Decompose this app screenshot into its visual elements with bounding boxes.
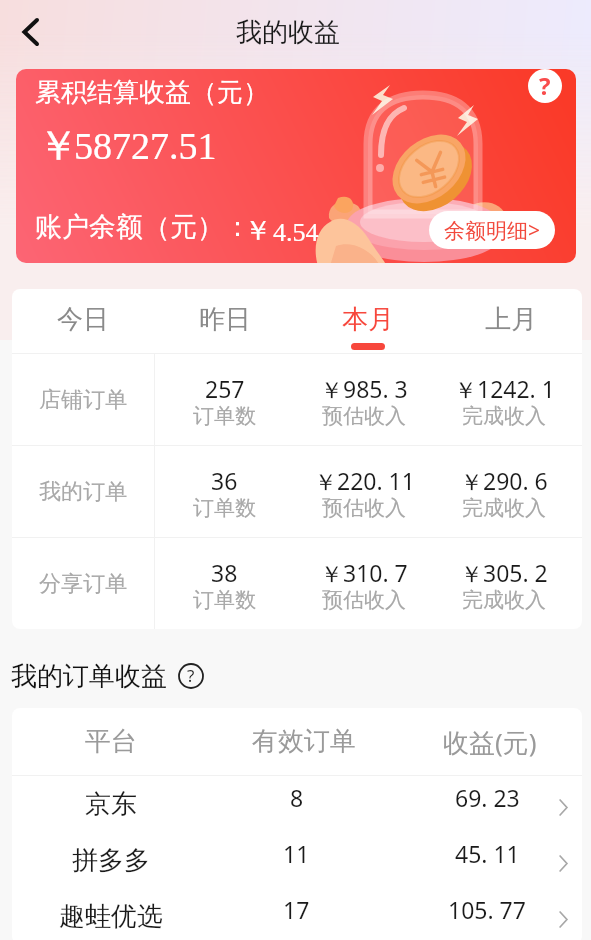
- staticText: 257: [205, 373, 245, 404]
- staticText: 完成收入: [462, 495, 546, 521]
- staticText: 本月: [342, 303, 394, 336]
- staticText: 45. 11: [455, 838, 520, 869]
- staticText: 余额明细>: [444, 216, 541, 245]
- button[interactable]: 昨日: [154, 289, 296, 353]
- staticText: 完成收入: [462, 587, 546, 613]
- staticText: 36: [211, 465, 238, 496]
- staticText: 69. 23: [455, 782, 520, 813]
- staticText: 今日: [57, 303, 109, 336]
- staticText: 预估收入: [322, 495, 406, 521]
- staticText: ￥: [37, 120, 79, 173]
- staticText: 订单数: [193, 495, 256, 521]
- staticText: 38: [211, 557, 238, 588]
- staticText: 完成收入: [462, 403, 546, 429]
- staticText: 账户余额（元）：: [35, 210, 251, 244]
- staticText: ￥220. 11: [314, 465, 415, 496]
- button[interactable]: 拼多多: [12, 832, 582, 888]
- button[interactable]: Help: [528, 69, 562, 103]
- staticText: 58727.51: [74, 125, 217, 167]
- staticText: 昨日: [199, 303, 251, 336]
- staticText: 我的订单收益: [11, 660, 167, 693]
- staticText: 京东: [85, 788, 137, 821]
- staticText: 分享订单: [39, 570, 127, 598]
- button[interactable]: 上月: [439, 289, 582, 353]
- staticText: ?: [539, 69, 551, 102]
- staticText: 上月: [485, 303, 537, 336]
- staticText: ?: [187, 664, 195, 687]
- staticText: ￥: [244, 213, 272, 248]
- staticText: ￥310. 7: [320, 557, 408, 588]
- staticText: 收益(元): [443, 724, 537, 760]
- staticText: 订单数: [193, 403, 256, 429]
- staticText: 有效订单: [252, 725, 356, 758]
- staticText: 我的收益: [236, 16, 340, 49]
- button[interactable]: 京东: [12, 776, 582, 832]
- button[interactable]: Help: [177, 662, 205, 690]
- staticText: 4.54: [273, 218, 319, 247]
- staticText: 店铺订单: [39, 386, 127, 414]
- staticText: 订单数: [193, 587, 256, 613]
- staticText: ￥985. 3: [320, 373, 408, 404]
- button[interactable]: 余额明细>: [429, 211, 555, 249]
- button[interactable]: 今日: [12, 289, 154, 353]
- staticText: 趣蛙优选: [59, 900, 163, 933]
- staticText: 17: [283, 894, 310, 925]
- staticText: 8: [290, 782, 304, 813]
- button[interactable]: 本月: [296, 289, 439, 353]
- staticText: 预估收入: [322, 403, 406, 429]
- staticText: 我的订单: [39, 478, 127, 506]
- staticText: 累积结算收益（元）: [35, 76, 269, 109]
- staticText: 平台: [85, 725, 137, 758]
- staticText: ￥290. 6: [460, 465, 548, 496]
- button[interactable]: Back: [4, 9, 56, 61]
- staticText: 105. 77: [448, 894, 526, 925]
- staticText: 预估收入: [322, 587, 406, 613]
- staticText: 11: [283, 838, 310, 869]
- staticText: ￥305. 2: [460, 557, 548, 588]
- button[interactable]: 趣蛙优选: [12, 888, 582, 940]
- staticText: ￥1242. 1: [454, 373, 555, 404]
- staticText: 拼多多: [72, 844, 150, 877]
